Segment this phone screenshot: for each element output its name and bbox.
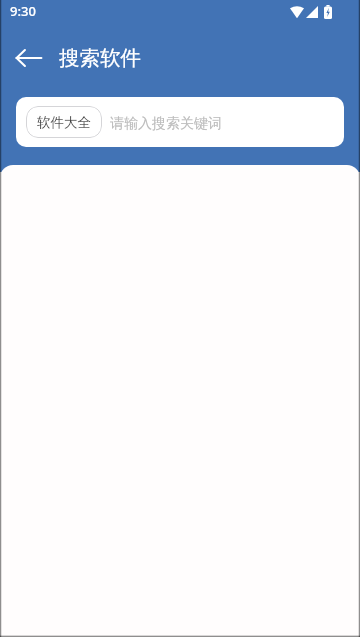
staticText: 9:30 [10, 2, 36, 20]
button[interactable]: Back [9, 38, 49, 78]
staticText: 搜索软件 [59, 45, 141, 71]
staticText: 软件大全 [37, 114, 91, 131]
button[interactable]: 软件大全 [16, 97, 344, 147]
staticText: 请输入搜索关键词 [110, 115, 222, 133]
button[interactable]: 软件大全 [26, 106, 102, 138]
